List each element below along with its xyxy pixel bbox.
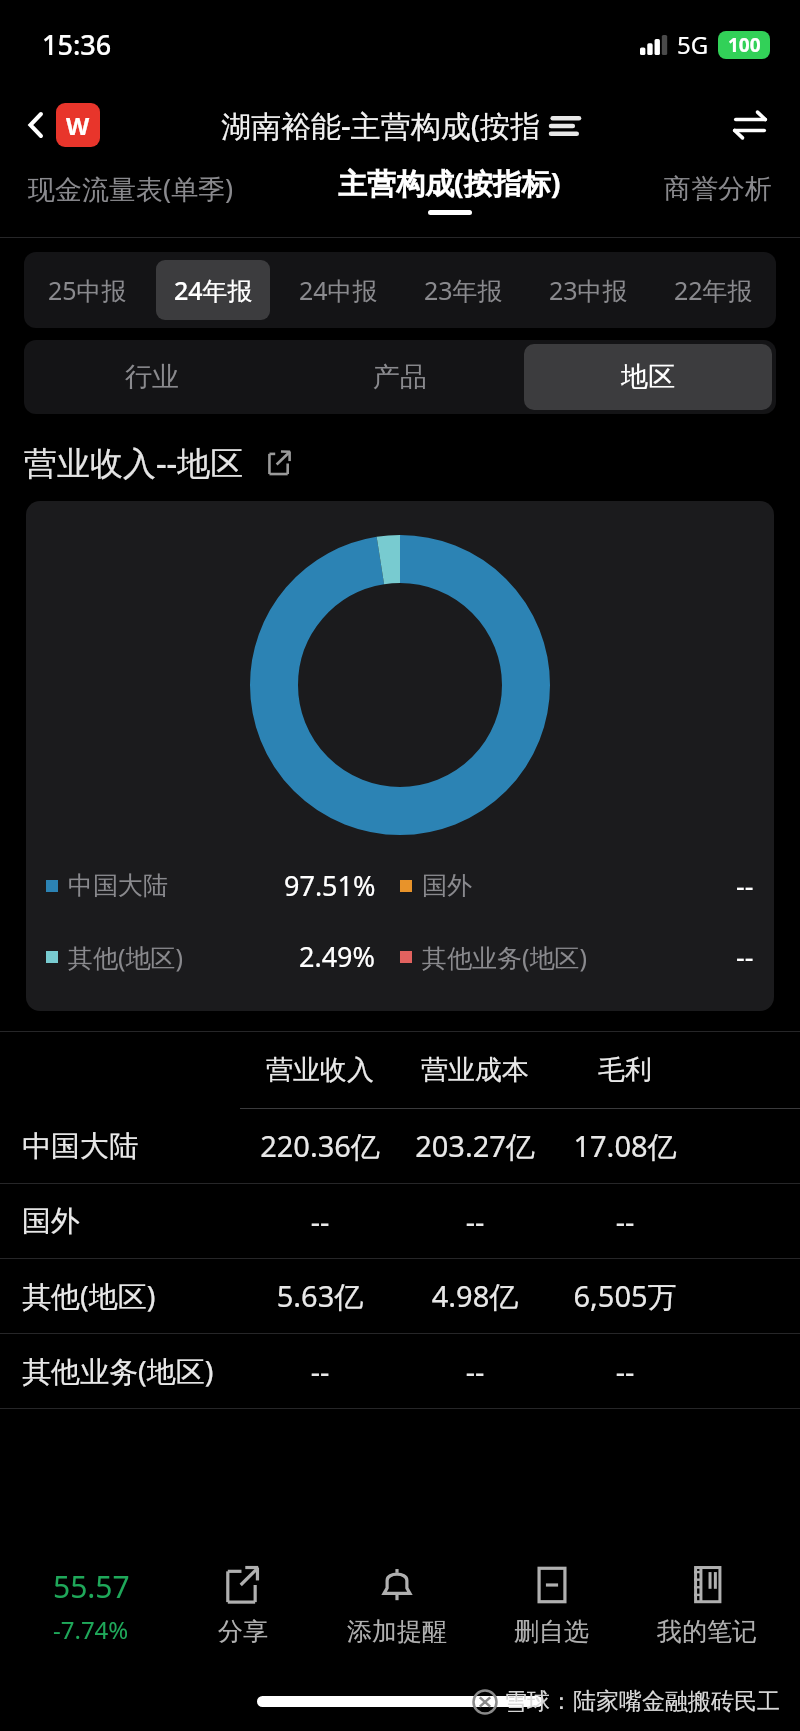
button[interactable]: 24中报 [282,260,395,320]
button[interactable]: 分享 [166,1560,320,1653]
staticText: 产品 [373,360,427,394]
button[interactable]: 地区 [524,344,772,410]
staticText: 雪球：陆家嘴金融搬砖民工 [504,1687,780,1716]
staticText: -- [240,1202,400,1241]
staticText: 主营构成(按指标) [338,163,561,203]
staticText: 分享 [218,1616,268,1647]
staticText: 其他(地区) [68,940,184,974]
staticText: 删自选 [514,1616,589,1647]
button[interactable]: 其他(地区) [0,1259,800,1333]
staticText: 22年报 [674,273,753,307]
staticText: 国外 [422,870,472,901]
staticText: 我的笔记 [657,1616,757,1647]
staticText: 4.98亿 [400,1276,550,1316]
button[interactable]: 22年报 [657,260,770,320]
staticText: 行业 [125,360,179,394]
staticText: 现金流量表(单季) [28,170,234,207]
staticText: -7.74% [53,1613,129,1646]
staticText: 25中报 [48,273,127,307]
staticText: 100 [728,32,761,58]
button[interactable]: 行业 [28,344,276,410]
button[interactable]: Filter [550,111,580,141]
button[interactable]: Switch [726,101,774,149]
staticText: 2.49% [299,938,376,975]
button[interactable]: 24年报 [156,260,270,320]
staticText: 中国大陆 [68,870,168,901]
button[interactable]: 添加提醒 [320,1560,474,1653]
staticText: -- [550,1202,700,1241]
staticText: 97.51% [284,867,376,904]
staticText: 203.27亿 [400,1126,550,1166]
staticText: 国外 [22,1203,240,1240]
staticText: 24年报 [174,273,253,307]
button[interactable]: 中国大陆 [0,1109,800,1183]
staticText: 24中报 [299,273,378,307]
button[interactable]: 其他业务(地区) [0,1334,800,1408]
button[interactable]: 现金流量表(单季) [22,162,240,215]
button[interactable]: 国外 [0,1184,800,1258]
button[interactable]: 23年报 [407,260,520,320]
button[interactable]: 我的笔记 [629,1560,784,1653]
staticText: 商誉分析 [664,172,772,206]
staticText: 220.36亿 [240,1126,400,1166]
staticText: -- [400,1202,550,1241]
staticText: 营业收入--地区 [24,440,244,485]
button[interactable]: 25中报 [30,260,144,320]
staticText: 地区 [621,360,675,394]
button[interactable]: 商誉分析 [658,164,778,214]
staticText: 其他(地区) [22,1276,240,1316]
staticText: 营业成本 [400,1053,550,1087]
button[interactable]: 主营构成(按指标) [332,163,567,215]
button[interactable]: Weibo [56,103,100,147]
staticText: 17.08亿 [550,1126,700,1166]
staticText: 湖南裕能-主营构成(按指 [221,105,540,146]
staticText: 其他业务(地区) [22,1351,240,1391]
staticText: 中国大陆 [22,1128,240,1165]
staticText: 添加提醒 [347,1616,447,1647]
staticText: 6,505万 [550,1276,700,1316]
staticText: -- [736,867,754,904]
staticText: -- [550,1352,700,1391]
staticText: 55.57 [53,1566,130,1607]
button[interactable]: 产品 [276,344,524,410]
staticText: 其他业务(地区) [422,940,588,974]
button[interactable]: 删自选 [474,1560,629,1653]
button[interactable]: Share chart [262,445,298,481]
button[interactable]: 23中报 [532,260,645,320]
button[interactable]: 55.57 [16,1566,166,1646]
staticText: -- [400,1352,550,1391]
staticText: 15:36 [42,26,112,63]
staticText: 毛利 [550,1053,700,1087]
staticText: 5G [677,28,709,61]
staticText: W [66,109,90,142]
button[interactable]: Back [14,102,60,148]
staticText: -- [240,1352,400,1391]
staticText: 营业收入 [240,1053,400,1087]
staticText: 23年报 [424,273,503,307]
staticText: 5.63亿 [240,1276,400,1316]
staticText: 23中报 [549,273,628,307]
staticText: -- [736,938,754,975]
